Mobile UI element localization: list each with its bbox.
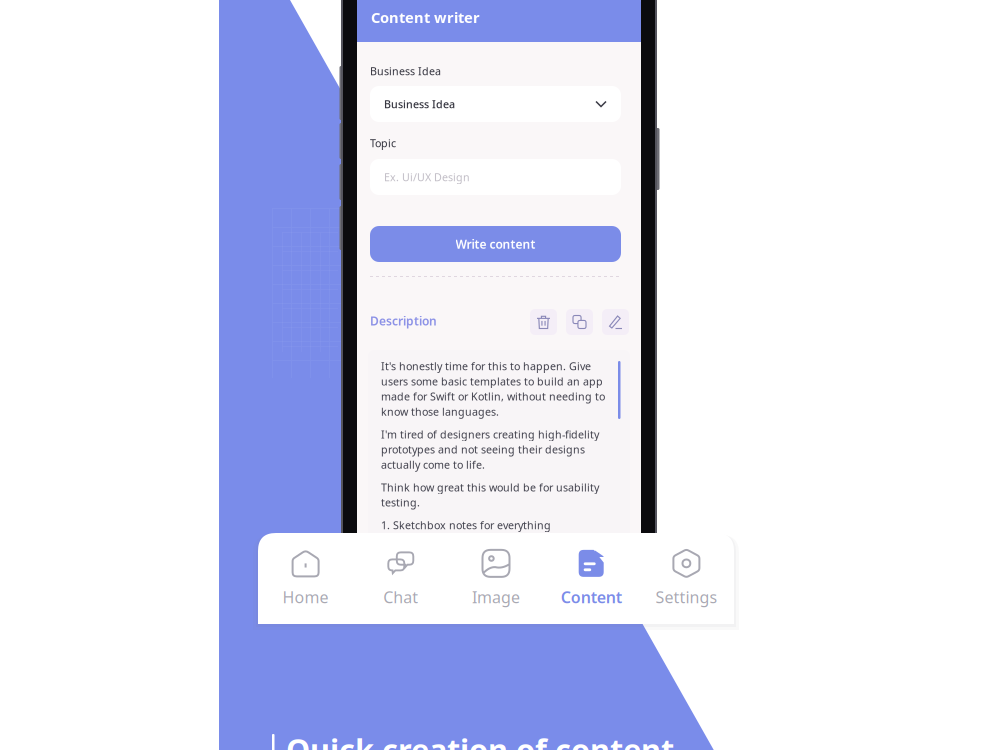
button[interactable]: Content <box>544 533 639 624</box>
staticText: Business Idea <box>384 97 455 111</box>
staticText: Content writer <box>371 7 480 27</box>
staticText: 1. Sketchbox notes for everything <box>381 518 551 532</box>
staticText: I'm tired of designers creating high-fid… <box>381 427 599 472</box>
staticText: Description <box>370 313 437 329</box>
button[interactable]: Settings <box>639 533 734 624</box>
button[interactable]: Chat <box>353 533 448 624</box>
button[interactable]: Home <box>258 533 353 624</box>
staticText: Write content <box>455 236 535 252</box>
staticText: Settings <box>655 586 717 608</box>
staticText: Think how great this would be for usabil… <box>381 480 599 509</box>
button[interactable]: Duplicate <box>566 309 593 335</box>
staticText: Image <box>472 586 520 608</box>
staticText: Chat <box>383 586 418 608</box>
button[interactable]: Edit <box>602 309 629 335</box>
staticText: Content <box>561 586 622 608</box>
staticText: Business Idea <box>370 64 441 78</box>
staticText: Quick creation of content <box>286 729 674 750</box>
button[interactable]: Image <box>448 533 544 624</box>
button[interactable]: Delete <box>530 309 557 335</box>
staticText: Home <box>283 586 329 608</box>
staticText: It's honestly time for this to happen. G… <box>381 359 605 419</box>
button[interactable]: Write content <box>370 226 621 262</box>
staticText: Topic <box>370 136 396 150</box>
staticText: Ex. Ui/UX Design <box>384 170 470 184</box>
